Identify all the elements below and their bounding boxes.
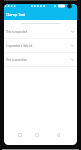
button[interactable]: I expanded a little bit (4, 39, 77, 53)
staticText: This is accordion (6, 58, 27, 62)
button[interactable] (4, 129, 77, 145)
staticText: Click on the text below to expand it (21, 21, 61, 24)
staticText: This is expanded (6, 30, 28, 34)
button[interactable]: This is accordion (4, 53, 77, 67)
staticText: Clamp Text (6, 11, 25, 17)
button[interactable]: This is expanded (4, 25, 77, 39)
staticText: I expanded a little bit (6, 44, 33, 48)
